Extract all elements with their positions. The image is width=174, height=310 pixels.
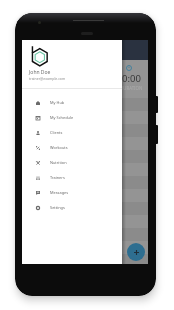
staticText: 0:00 (122, 72, 141, 85)
button[interactable]: Workouts (22, 140, 122, 155)
button[interactable] (22, 163, 148, 176)
button[interactable] (22, 111, 148, 124)
button[interactable] (22, 189, 148, 202)
staticText: Clients (50, 130, 63, 135)
button[interactable]: Clients (22, 125, 122, 140)
button[interactable]: My Schedule (22, 110, 122, 125)
button[interactable]: 0:00 (45, 60, 80, 98)
staticText: Settings (50, 205, 65, 210)
button[interactable]: Trainers (22, 170, 122, 185)
staticText: Nutrition (50, 160, 67, 165)
staticText: DURATION (86, 85, 109, 91)
button[interactable]: 0:00 (80, 60, 114, 98)
button[interactable]: Settings (22, 200, 122, 215)
staticText: DURATION (120, 85, 143, 91)
button[interactable]: Add (127, 243, 145, 261)
button[interactable] (22, 228, 148, 241)
button[interactable] (22, 215, 148, 228)
button[interactable] (22, 40, 148, 60)
staticText: 0:00 (53, 72, 72, 85)
staticText: My Hub (50, 100, 65, 105)
button[interactable] (22, 241, 148, 254)
staticText: Trainers (50, 175, 65, 180)
button[interactable] (22, 176, 148, 189)
staticText: My Schedule (50, 115, 74, 120)
staticText: Messages (50, 190, 69, 195)
button[interactable] (22, 150, 148, 163)
button[interactable] (22, 98, 148, 111)
staticText: Workouts (50, 145, 68, 150)
button[interactable]: 0:00 (114, 60, 148, 98)
button[interactable] (22, 124, 148, 137)
button[interactable] (22, 202, 148, 215)
staticText: DURATION (51, 85, 74, 91)
button[interactable]: Nutrition (22, 155, 122, 170)
button[interactable] (22, 254, 148, 264)
button[interactable] (22, 137, 148, 150)
staticText: trainer@example.com (29, 76, 66, 81)
staticText: John Doe (29, 69, 51, 76)
button[interactable]: Messages (22, 185, 122, 200)
button[interactable]: My Hub (22, 95, 122, 110)
